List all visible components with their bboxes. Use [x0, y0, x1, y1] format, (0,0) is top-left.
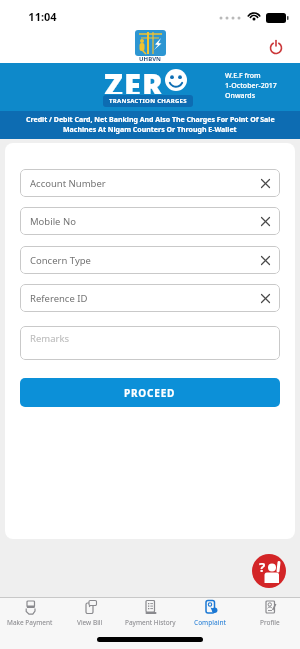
button[interactable]: Reference ID [20, 284, 280, 312]
button[interactable]: PROCEED [20, 378, 280, 407]
staticText: Make Payment [7, 618, 53, 627]
button[interactable]: Profile [240, 599, 300, 633]
button[interactable]: Make Payment [0, 599, 60, 633]
button[interactable]: Remarks [20, 326, 280, 360]
staticText: 11:04 [28, 9, 57, 23]
staticText: Payment History [125, 618, 176, 627]
staticText: TRANSACTION CHARGES [109, 97, 187, 105]
button[interactable]: Account Number [20, 169, 280, 197]
staticText: Concern Type [30, 254, 91, 267]
button[interactable]: Complaint [180, 599, 240, 633]
staticText: Profile [260, 618, 280, 627]
button[interactable] [265, 36, 287, 58]
staticText: W.E.F from [225, 71, 261, 81]
staticText: PROCEED [124, 386, 176, 400]
staticText: Complaint [194, 618, 227, 627]
staticText: ? [259, 558, 266, 576]
staticText: View Bill [77, 618, 103, 627]
staticText: ZER [104, 64, 164, 94]
button[interactable]: Payment History [120, 599, 180, 633]
staticText: Onwards [225, 91, 256, 101]
staticText: Mobile No [30, 215, 76, 228]
button[interactable]: Mobile No [20, 207, 280, 235]
button[interactable]: Concern Type [20, 246, 280, 274]
staticText: Reference ID [30, 292, 88, 305]
button[interactable]: View Bill [60, 599, 120, 633]
button[interactable]: ? [252, 554, 286, 588]
staticText: Credit / Debit Card, Net Banking And Als… [26, 115, 275, 125]
staticText: Machines At Nigam Counters Or Through E-… [63, 125, 237, 135]
staticText: Account Number [30, 177, 106, 190]
staticText: Remarks [30, 332, 70, 345]
staticText: 1-October-2017 [225, 81, 277, 91]
staticText: UHBVN [139, 55, 161, 63]
